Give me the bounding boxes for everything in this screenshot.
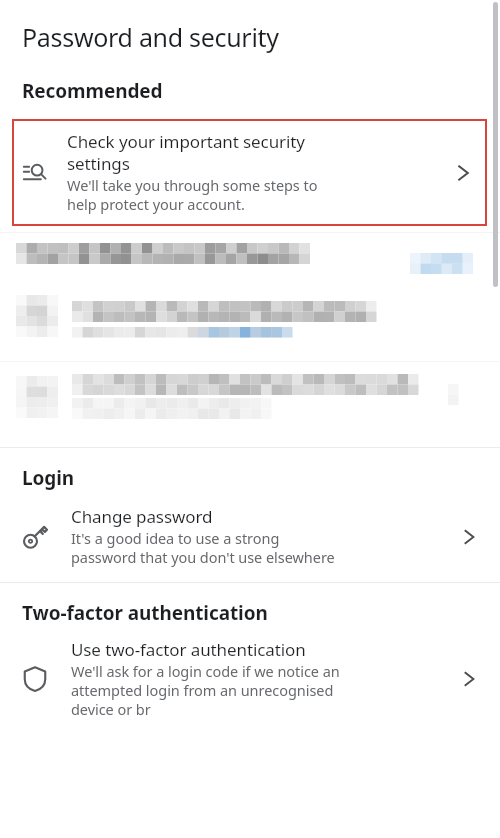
button[interactable]: Use two-factor authentication xyxy=(0,630,500,730)
other: Security checkup xyxy=(21,159,49,187)
button[interactable]: Change password xyxy=(0,497,500,582)
staticText: Login xyxy=(22,465,75,491)
button[interactable]: Security checkup xyxy=(12,119,487,226)
staticText: We'll take you through some steps to hel… xyxy=(67,175,318,215)
staticText: Recommended xyxy=(22,78,163,104)
staticText: Use two-factor authentication xyxy=(71,638,306,661)
staticText: It's a good idea to use a strong passwor… xyxy=(71,528,335,568)
other: Change password xyxy=(20,522,50,552)
staticText: Password and security xyxy=(22,20,279,54)
staticText: Check your important security settings xyxy=(67,130,305,175)
staticText: Change password xyxy=(71,505,213,528)
staticText: We'll ask for a login code if we notice … xyxy=(71,661,340,720)
other: Use two-factor authentication xyxy=(20,664,50,694)
staticText: Two-factor authentication xyxy=(22,600,268,626)
